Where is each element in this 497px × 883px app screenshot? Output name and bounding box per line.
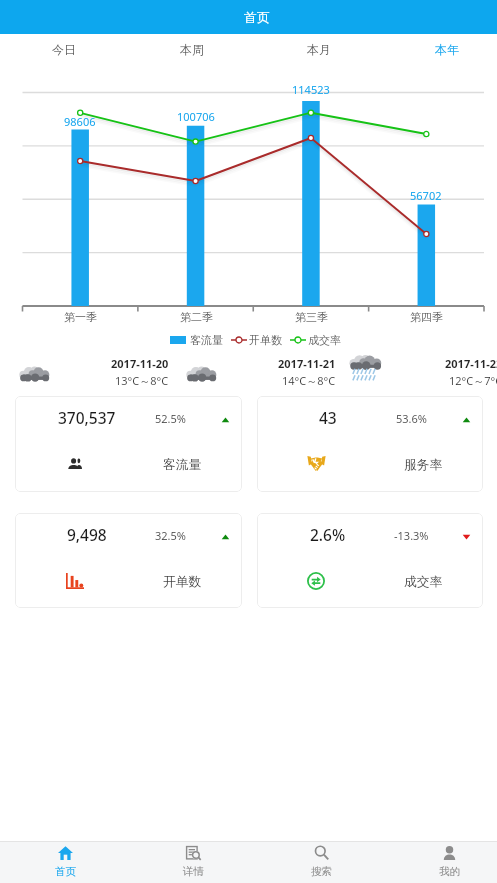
staticText: 14°C～8°C [282, 373, 336, 388]
button[interactable]: 9,498 [15, 513, 242, 608]
button[interactable]: 2.6% [257, 513, 483, 608]
staticText: -13.3% [394, 528, 429, 543]
staticText: 本月 [307, 42, 331, 57]
staticText: 成交率 [404, 574, 443, 590]
staticText: 详情 [183, 865, 204, 878]
staticText: 43 [319, 407, 337, 428]
staticText: 100706 [177, 109, 215, 124]
staticText: 53.6% [396, 411, 427, 426]
staticText: 370,537 [58, 407, 116, 428]
staticText: 成交率 [308, 333, 341, 347]
staticText: 今日 [52, 42, 76, 57]
button[interactable]: Profile [385, 842, 497, 883]
button[interactable]: Search [257, 842, 385, 883]
staticText: 114523 [292, 82, 330, 97]
staticText: 我的 [439, 865, 460, 878]
staticText: 第二季 [180, 310, 213, 324]
staticText: 客流量 [190, 333, 223, 347]
staticText: 9,498 [67, 524, 107, 545]
staticText: 本周 [180, 42, 204, 57]
staticText: 第一季 [64, 310, 97, 324]
staticText: 首页 [55, 865, 76, 878]
staticText: 服务率 [404, 457, 443, 473]
staticText: 第四季 [410, 310, 443, 324]
staticText: 2.6% [310, 524, 346, 545]
button[interactable]: Home [1, 842, 129, 883]
staticText: 56702 [410, 188, 442, 203]
staticText: 2017-11-22 [445, 356, 497, 371]
staticText: 13°C～8°C [115, 373, 169, 388]
button[interactable]: 43 [257, 396, 483, 492]
button[interactable]: 本年 [383, 34, 497, 64]
staticText: 52.5% [155, 411, 186, 426]
staticText: 12°C～7°C [449, 373, 497, 388]
staticText: 2017-11-21 [278, 356, 336, 371]
staticText: 搜索 [311, 865, 332, 878]
button[interactable]: 370,537 [15, 396, 242, 492]
staticText: 客流量 [163, 457, 202, 473]
staticText: 开单数 [249, 333, 282, 347]
staticText: 本年 [435, 42, 459, 57]
button[interactable]: Details [129, 842, 257, 883]
staticText: 2017-11-20 [111, 356, 169, 371]
staticText: 32.5% [155, 528, 186, 543]
button[interactable]: 本周 [128, 34, 256, 64]
staticText: 开单数 [163, 574, 202, 590]
staticText: 首页 [244, 9, 270, 25]
staticText: 第三季 [295, 310, 328, 324]
button[interactable]: 今日 [0, 34, 128, 64]
staticText: 98606 [64, 114, 96, 129]
button[interactable]: 本月 [255, 34, 383, 64]
